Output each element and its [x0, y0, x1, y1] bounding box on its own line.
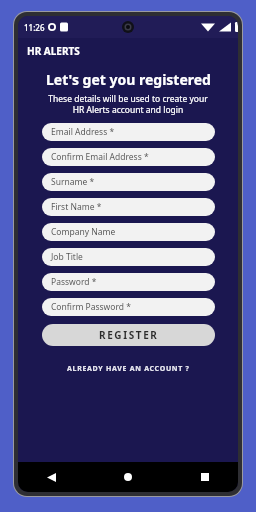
button[interactable]: Job Title [42, 248, 215, 266]
button[interactable]: First Name * [42, 198, 215, 216]
staticText: Company Name [51, 226, 116, 238]
button[interactable]: Password * [42, 273, 215, 291]
button[interactable]: Back [40, 466, 62, 488]
button[interactable]: Company Name [42, 223, 215, 241]
staticText: Job Title [51, 251, 83, 263]
button[interactable]: Confirm Password * [42, 298, 215, 316]
staticText: HR ALERTS [27, 44, 80, 58]
staticText: Confirm Password * [51, 301, 131, 313]
staticText: REGISTER [99, 328, 159, 342]
button[interactable]: Home [117, 466, 139, 488]
button[interactable]: Email Address * [42, 123, 215, 141]
staticText: ALREADY HAVE AN ACCOUNT ? [67, 364, 190, 374]
staticText: Confirm Email Address * [51, 151, 149, 163]
staticText: Let's get you registered [46, 70, 211, 89]
staticText: First Name * [51, 201, 102, 213]
staticText: These details will be used to create you… [48, 93, 208, 115]
staticText: Email Address * [51, 126, 115, 138]
button[interactable]: Surname * [42, 173, 215, 191]
staticText: Password * [51, 276, 97, 288]
button[interactable]: Confirm Email Address * [42, 148, 215, 166]
staticText: Surname * [51, 176, 95, 188]
staticText: 11:26 [24, 22, 45, 33]
button[interactable]: ALREADY HAVE AN ACCOUNT ? [61, 361, 196, 377]
button[interactable]: Recent apps [194, 466, 216, 488]
button[interactable]: REGISTER [42, 324, 215, 346]
